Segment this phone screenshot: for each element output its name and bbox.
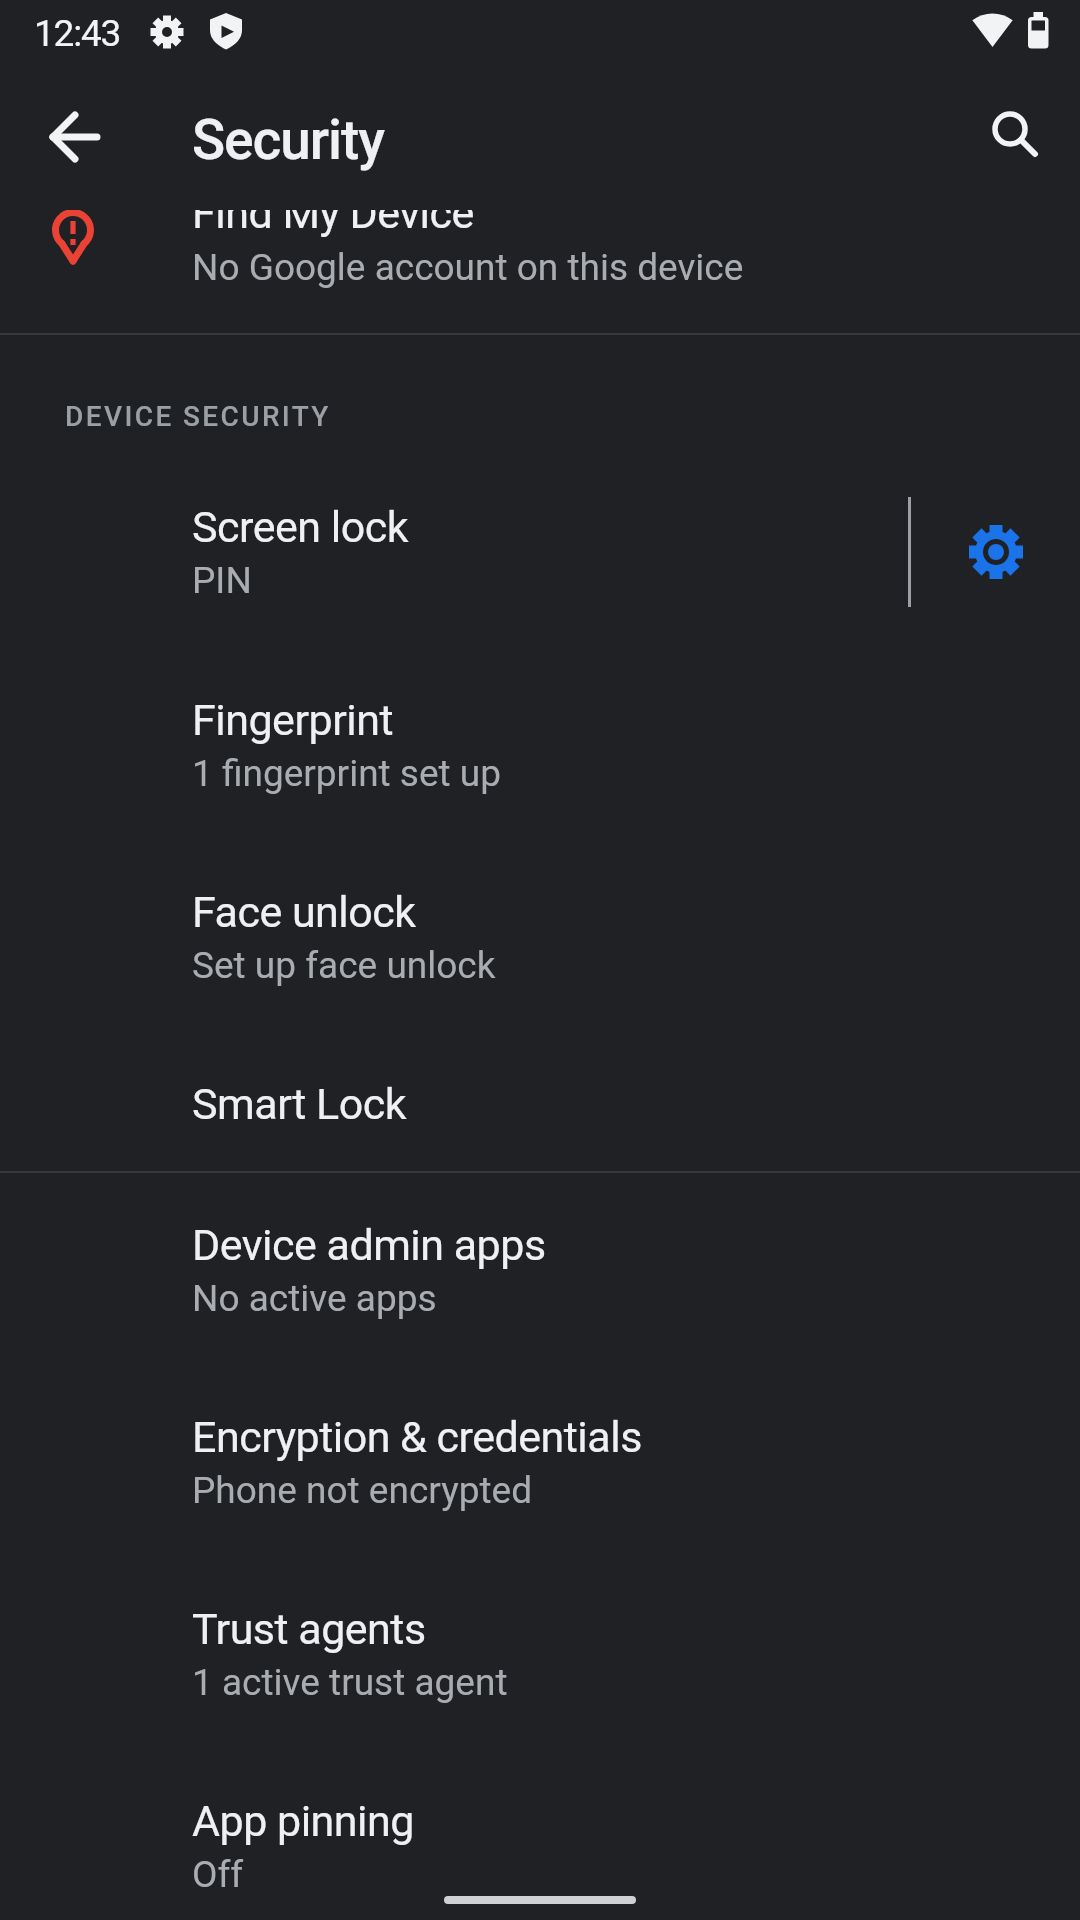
staticText: Encryption & credentials — [192, 1412, 642, 1462]
button[interactable] — [941, 497, 1051, 607]
staticText: 12:43 — [34, 12, 121, 55]
button[interactable] — [0, 1750, 1080, 1920]
button[interactable] — [0, 1366, 1080, 1558]
button[interactable] — [963, 87, 1063, 187]
staticText: Security — [192, 108, 384, 172]
button[interactable] — [0, 210, 1080, 333]
button[interactable] — [0, 645, 1080, 838]
button[interactable] — [0, 1174, 1080, 1366]
staticText: No Google account on this device — [192, 246, 744, 289]
staticText: Smart Lock — [192, 1079, 406, 1129]
staticText: Off — [192, 1853, 244, 1896]
staticText: Fingerprint — [192, 695, 393, 745]
button[interactable] — [0, 452, 1080, 645]
staticText: Device admin apps — [192, 1220, 546, 1270]
staticText: 1 fingerprint set up — [192, 752, 502, 795]
staticText: App pinning — [192, 1796, 414, 1846]
button[interactable] — [25, 87, 125, 187]
staticText: Set up face unlock — [192, 944, 496, 987]
staticText: DEVICE SECURITY — [65, 400, 331, 430]
staticText: Phone not encrypted — [192, 1469, 533, 1512]
button[interactable] — [0, 838, 1080, 1031]
staticText: 1 active trust agent — [192, 1661, 508, 1704]
button[interactable] — [0, 1558, 1080, 1750]
staticText: Find My Device — [192, 188, 474, 238]
button[interactable] — [0, 1031, 1080, 1171]
staticText: No active apps — [192, 1277, 437, 1320]
staticText: Trust agents — [192, 1604, 426, 1654]
staticText: Face unlock — [192, 887, 416, 937]
staticText: Screen lock — [192, 502, 409, 552]
staticText: PIN — [192, 559, 252, 602]
